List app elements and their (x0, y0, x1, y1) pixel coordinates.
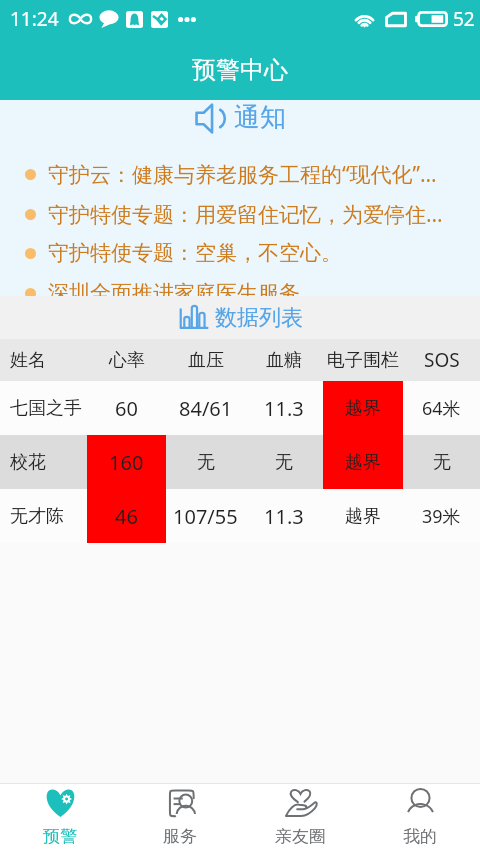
button[interactable]: 守护特使专题：用爱留住记忆，为爱停住… (0, 194, 480, 234)
button[interactable]: Alerts (0, 784, 120, 853)
staticText: 守护特使专题：用爱留住记忆，为爱停住… (48, 200, 443, 229)
button[interactable]: 守护特使专题：空巢，不空心。 (0, 233, 480, 273)
staticText: 七国之手 (10, 397, 82, 420)
staticText: 无 (197, 451, 215, 474)
staticText: 11.3 (264, 395, 304, 422)
button[interactable]: Friends (240, 784, 360, 853)
button[interactable]: 守护云：健康与养老服务工程的“现代化”… (0, 154, 480, 194)
staticText: 血糖 (266, 349, 302, 372)
button[interactable]: 无才陈 (0, 489, 480, 543)
staticText: 电子围栏 (327, 349, 399, 372)
staticText: 姓名 (10, 349, 46, 372)
staticText: SOS (424, 347, 460, 373)
staticText: 84/61 (179, 395, 233, 422)
staticText: 107/55 (173, 503, 238, 530)
button[interactable]: Profile (360, 784, 480, 853)
staticText: 11:24 (10, 6, 59, 32)
staticText: 60 (115, 395, 138, 422)
staticText: 无 (275, 451, 293, 474)
staticText: 11.3 (264, 503, 304, 530)
staticText: 46 (115, 503, 138, 530)
staticText: 39米 (422, 504, 461, 529)
staticText: 预警 (43, 826, 77, 847)
staticText: 无 (433, 451, 451, 474)
staticText: 64米 (422, 396, 461, 421)
staticText: 预警中心 (192, 55, 288, 85)
staticText: 血压 (188, 349, 224, 372)
staticText: 通知 (234, 101, 286, 134)
staticText: 服务 (163, 826, 197, 847)
staticText: 越界 (345, 451, 381, 474)
staticText: 52 (453, 6, 475, 32)
staticText: 无才陈 (10, 505, 64, 528)
staticText: 我的 (403, 826, 437, 847)
button[interactable]: Services (120, 784, 240, 853)
staticText: 校花 (10, 451, 46, 474)
staticText: 越界 (345, 505, 381, 528)
button[interactable]: 校花 (0, 435, 480, 489)
staticText: 守护特使专题：空巢，不空心。 (48, 240, 342, 266)
staticText: 心率 (109, 349, 145, 372)
button[interactable]: 七国之手 (0, 381, 480, 435)
staticText: 160 (109, 449, 144, 476)
button[interactable]: 深圳全面推进家庭医生服务 (0, 273, 480, 296)
staticText: 守护云：健康与养老服务工程的“现代化”… (48, 160, 437, 189)
staticText: 数据列表 (215, 304, 303, 332)
staticText: 深圳全面推进家庭医生服务 (48, 280, 300, 296)
staticText: 越界 (345, 397, 381, 420)
staticText: 亲友圈 (275, 826, 326, 847)
